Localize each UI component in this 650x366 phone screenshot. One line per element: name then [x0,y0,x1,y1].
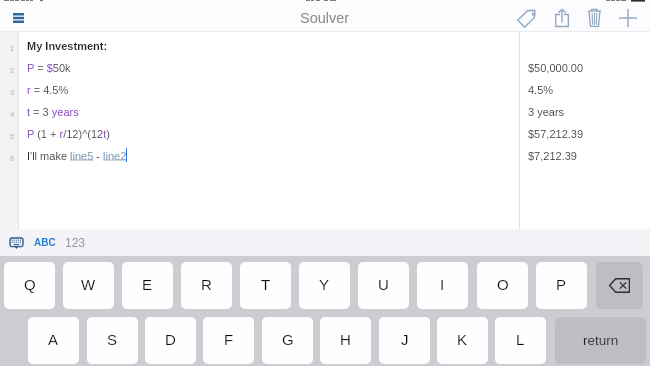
button[interactable]: Y [299,262,350,309]
staticText: F [224,331,234,348]
staticText: 2 [10,66,15,74]
staticText: My Investment: [27,40,108,52]
button[interactable]: H [320,317,371,364]
staticText: 5 [10,132,15,140]
staticText: E [142,276,153,293]
staticText: D [165,331,176,348]
staticText: 3 [10,88,15,96]
button[interactable]: Keyboard [4,229,28,256]
staticText: t = 3 years [27,106,79,118]
staticText: 4.5% [528,84,554,96]
button[interactable]: Backspace [596,262,643,309]
staticText: P = $50k [27,62,71,74]
button[interactable]: J [379,317,430,364]
button[interactable]: T [240,262,291,309]
button[interactable]: G [262,317,313,364]
staticText: W [81,276,96,293]
button[interactable]: Q [4,262,55,309]
staticText: L [516,331,525,348]
staticText: $57,212.39 [528,128,584,140]
staticText: S [107,331,118,348]
staticText: Y [319,276,330,293]
staticText: A [48,331,59,348]
button[interactable]: ABC [31,229,59,256]
staticText: return [583,333,619,348]
button[interactable]: O [477,262,528,309]
button[interactable]: 6 [0,145,650,167]
staticText: 123 [65,236,86,249]
staticText: R [201,276,212,293]
button[interactable]: 123 [62,229,88,256]
staticText: I [440,276,445,293]
button[interactable]: 4 [0,101,650,123]
staticText: $7,212.39 [528,150,577,162]
staticText: H [340,331,351,348]
staticText: T [261,276,271,293]
staticText: P [556,276,567,293]
staticText: 6 [10,154,15,162]
button[interactable]: 1 [0,35,650,57]
button[interactable]: I [417,262,468,309]
button[interactable]: 5 [0,123,650,145]
staticText: U [378,276,389,293]
staticText: I'll make line5 - line2 [27,150,127,162]
button[interactable]: E [122,262,173,309]
staticText: ABC [34,237,56,248]
staticText: r = 4.5% [27,84,69,96]
staticText: K [457,331,468,348]
staticText: J [401,331,409,348]
button[interactable]: A [28,317,79,364]
button[interactable]: W [63,262,114,309]
staticText: $50,000.00 [528,62,584,74]
staticText: Q [24,276,36,293]
staticText: 1 [10,44,15,52]
button[interactable]: S [87,317,138,364]
button[interactable]: K [437,317,488,364]
button[interactable]: P [536,262,587,309]
button[interactable]: Tag [512,0,544,32]
staticText: Soulver [300,10,350,26]
button[interactable]: R [181,262,232,309]
button[interactable]: D [145,317,196,364]
staticText: P (1 + r/12)^(12t) [27,128,110,140]
button[interactable]: Add [612,0,644,32]
button[interactable]: F [203,317,254,364]
button[interactable]: L [495,317,546,364]
button[interactable]: 3 [0,79,650,101]
button[interactable]: Share [546,0,578,32]
staticText: G [282,331,294,348]
staticText: 3 years [528,106,565,118]
button[interactable]: Menu [5,0,31,32]
button[interactable]: Delete [578,0,610,32]
staticText: 4 [10,110,15,118]
button[interactable]: return [555,317,646,364]
button[interactable]: U [358,262,409,309]
staticText: O [497,276,509,293]
button[interactable]: 2 [0,57,650,79]
